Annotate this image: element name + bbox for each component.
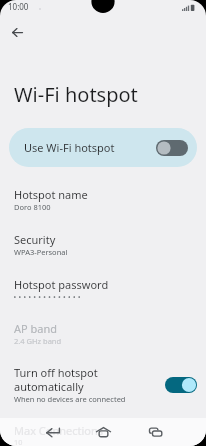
staticText: Use Wi-Fi hotspot [24,140,115,155]
button[interactable]: Recent apps [134,418,176,446]
staticText: Max Connections [14,423,104,438]
staticText: WPA3-Personal [14,247,68,257]
button[interactable]: Back [5,20,29,44]
button[interactable]: Use Wi-Fi hotspot [9,128,197,167]
button[interactable]: AP band [0,320,206,364]
staticText: Hotspot password [14,277,109,292]
button[interactable]: Hotspot password [0,276,206,320]
staticText: Doro 8100 [14,202,51,212]
staticText: AP band [14,321,58,336]
staticText: Security [14,232,56,247]
button[interactable]: Max Connections [14,423,104,446]
staticText: 2.4 GHz band [14,336,62,346]
staticText: Turn off hotspot automatically [14,365,98,394]
button[interactable]: Hotspot name [0,186,206,230]
staticText: Hotspot name [14,187,88,202]
button[interactable]: Security [0,231,206,275]
button[interactable]: Home [82,418,124,446]
button[interactable]: Back [31,418,73,446]
staticText: 10 [14,437,23,446]
staticText: 10:00 [8,1,29,12]
staticText: Wi-Fi hotspot [14,81,138,108]
button[interactable]: Turn off hotspot automatically [0,364,206,414]
staticText: When no devices are connected [14,394,126,404]
